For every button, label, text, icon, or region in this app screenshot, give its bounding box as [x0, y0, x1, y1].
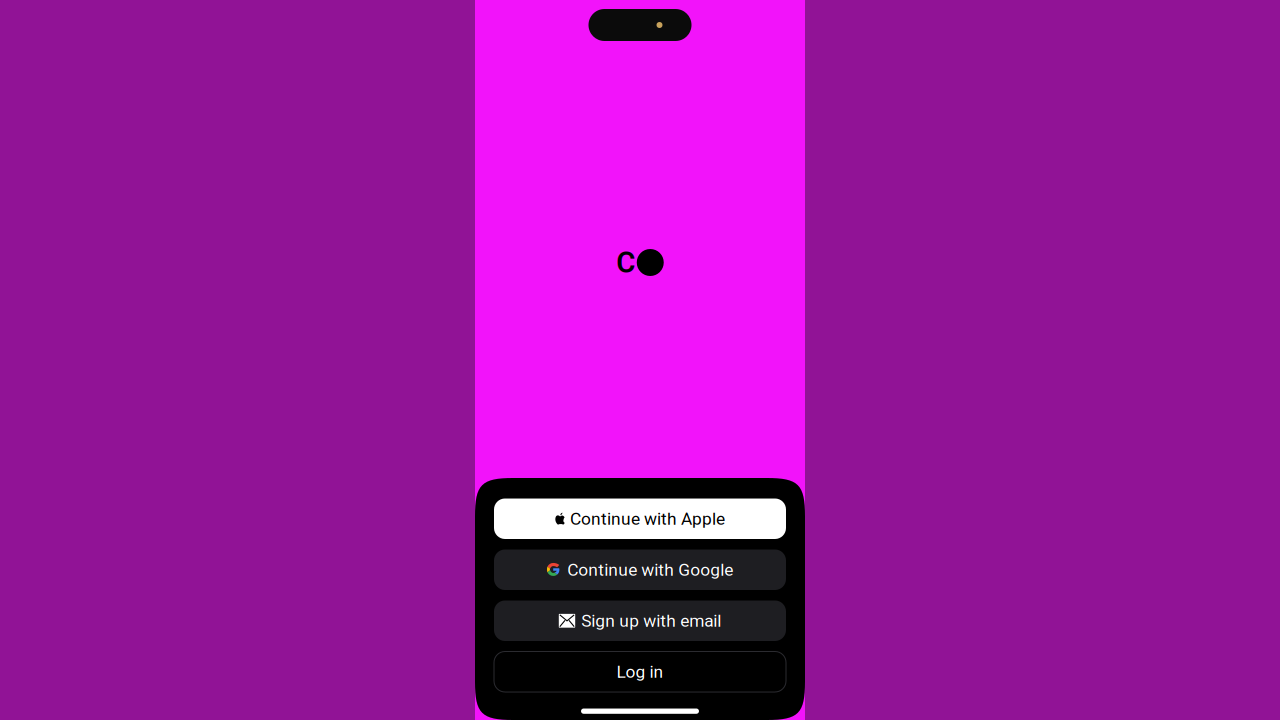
- staticText: Log in: [616, 662, 663, 682]
- button[interactable]: Continue with Google: [494, 549, 786, 590]
- button[interactable]: Sign up with email: [494, 600, 786, 641]
- button[interactable]: Continue with Apple: [494, 498, 786, 539]
- button[interactable]: Log in: [494, 651, 786, 692]
- staticText: Continue with Google: [567, 560, 733, 580]
- staticText: C: [616, 245, 635, 280]
- staticText: Continue with Apple: [570, 509, 725, 529]
- staticText: Sign up with email: [581, 611, 721, 631]
